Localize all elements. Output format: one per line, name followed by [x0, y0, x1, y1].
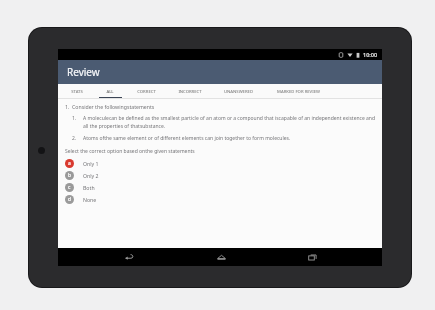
staticText: a	[68, 160, 71, 167]
button[interactable]: STATS	[58, 84, 95, 99]
staticText: Only 1	[83, 160, 99, 167]
button[interactable]: CORRECT	[125, 84, 167, 99]
staticText: UNANSWERED	[224, 89, 253, 95]
staticText: A moleculecan be defined as the smallest…	[83, 115, 376, 130]
button[interactable]: INCORRECT	[167, 84, 212, 99]
button[interactable]: b	[65, 169, 376, 181]
staticText: Only 2	[83, 172, 99, 179]
button[interactable]: Recent apps	[303, 248, 321, 266]
staticText: b	[68, 172, 71, 179]
staticText: 10:00	[363, 51, 378, 58]
button[interactable]: d	[65, 193, 376, 205]
staticText: Review	[67, 65, 100, 79]
button[interactable]: Back	[120, 248, 138, 266]
staticText: STATS	[71, 89, 83, 95]
staticText: None	[83, 196, 97, 203]
button[interactable]: MARKED FOR REVIEW	[265, 84, 332, 99]
button[interactable]: ALL	[95, 84, 125, 99]
button[interactable]: a	[65, 157, 376, 169]
staticText: 1.	[72, 115, 77, 122]
button[interactable]: UNANSWERED	[212, 84, 265, 99]
staticText: Select the correct option based onthe gi…	[65, 148, 195, 155]
staticText: ALL	[106, 89, 114, 95]
staticText: CORRECT	[137, 89, 156, 95]
staticText: 1. Consider the followingstatements	[65, 103, 155, 110]
button[interactable]: c	[65, 181, 376, 193]
staticText: Atoms ofthe same element or of different…	[83, 135, 291, 142]
staticText: 2.	[72, 135, 77, 142]
staticText: INCORRECT	[178, 89, 202, 95]
staticText: Both	[83, 184, 95, 191]
staticText: MARKED FOR REVIEW	[277, 89, 320, 95]
staticText: d	[68, 196, 71, 203]
staticText: c	[68, 184, 71, 191]
button[interactable]: Home	[212, 248, 230, 266]
